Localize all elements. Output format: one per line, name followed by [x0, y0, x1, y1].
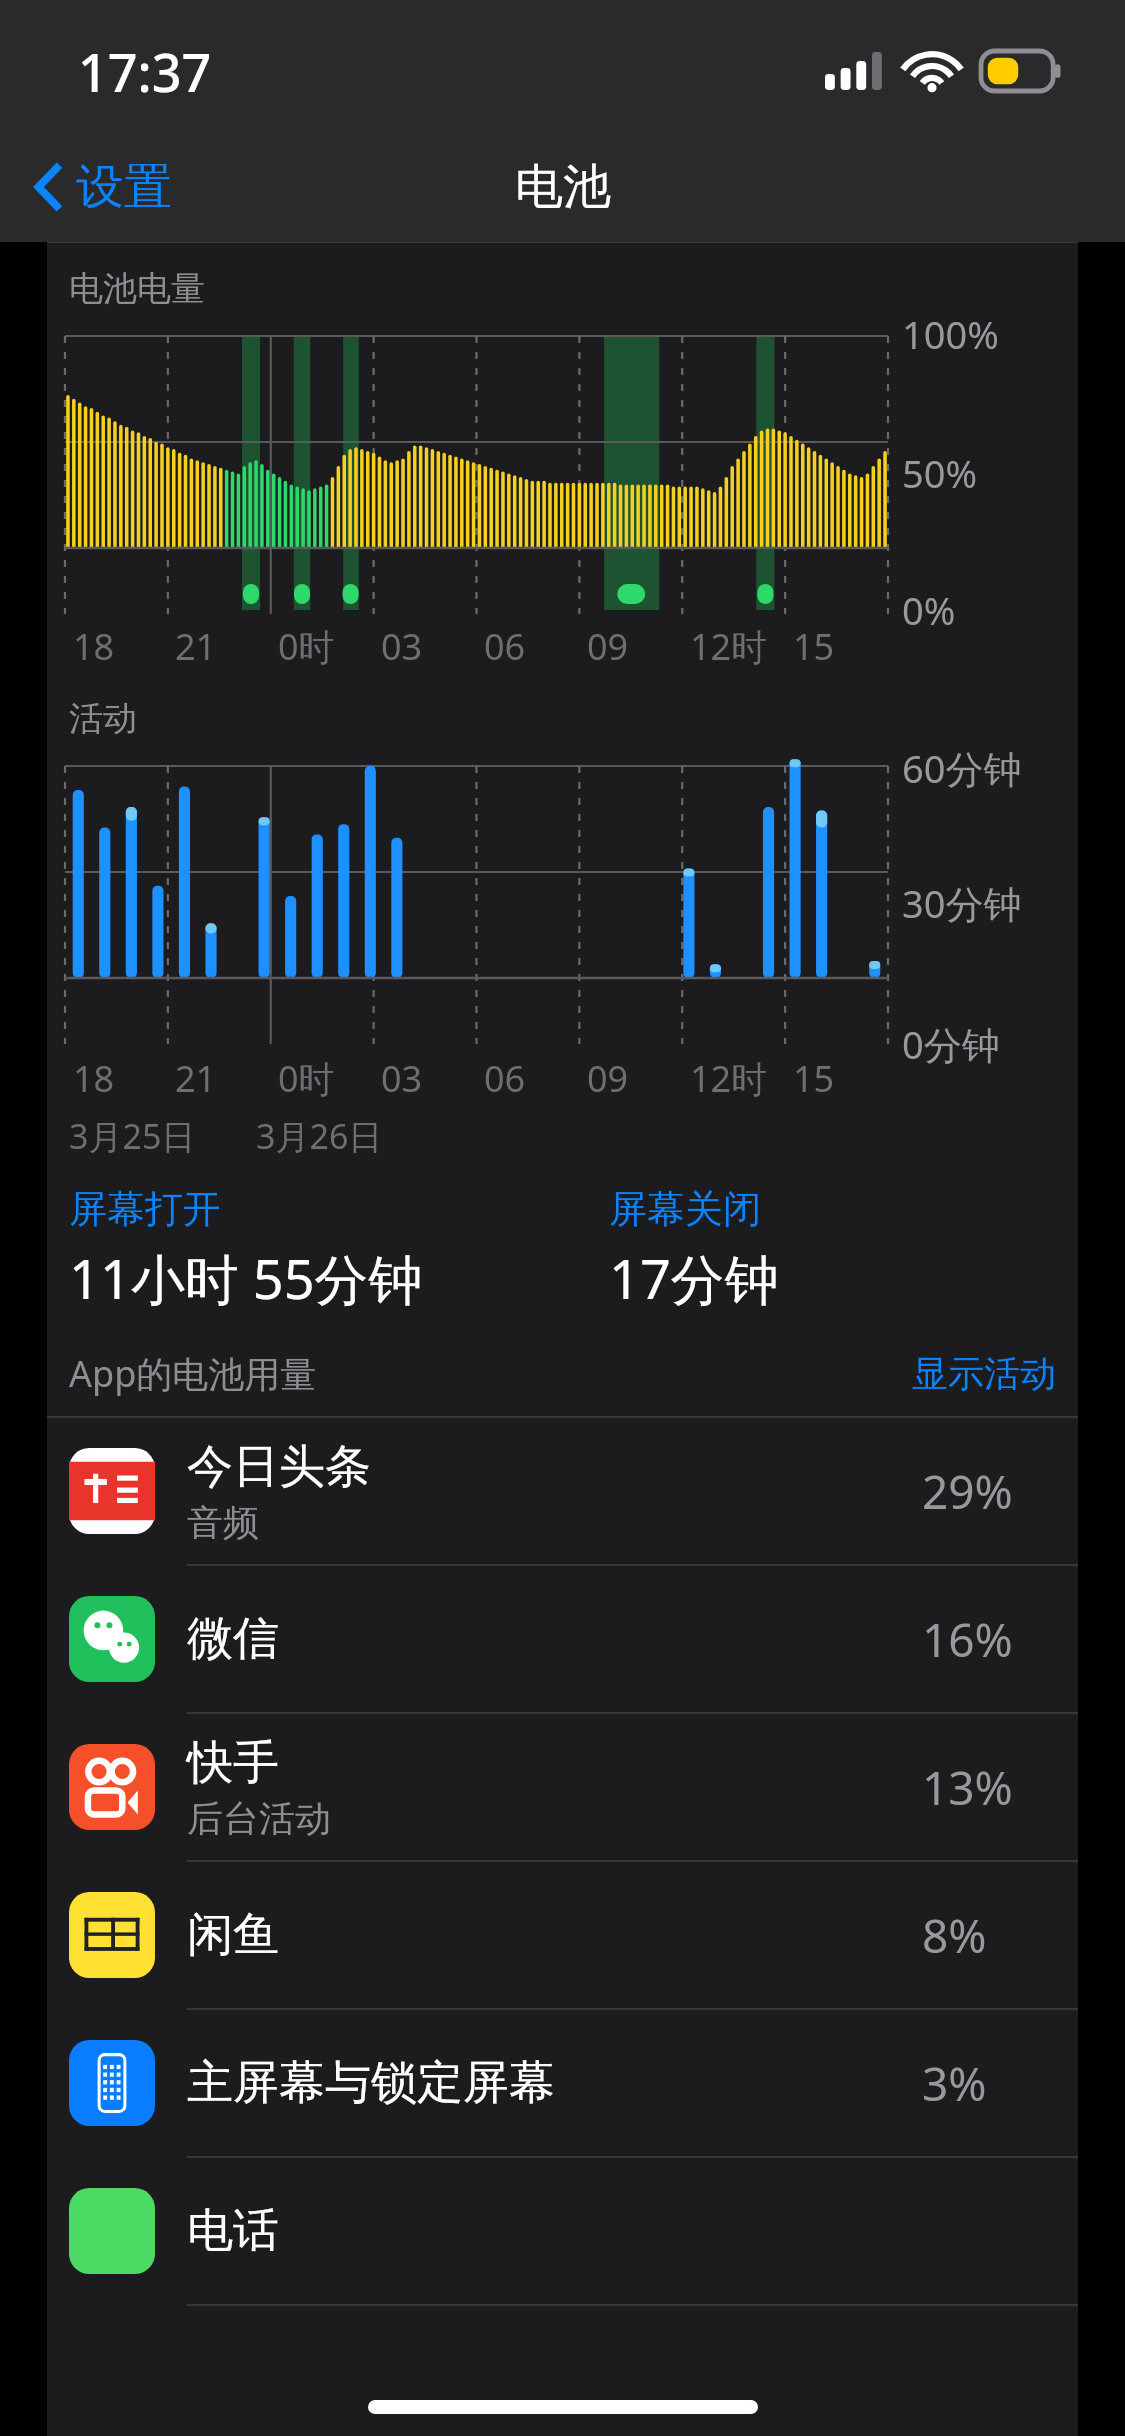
- staticText: 21: [175, 1054, 217, 1103]
- staticText: 12时: [690, 622, 768, 671]
- button[interactable]: 屏幕打开: [69, 1185, 609, 1315]
- staticText: 电池: [515, 157, 611, 217]
- staticText: 主屏幕与锁定屏幕: [187, 2054, 555, 2112]
- staticText: 0时: [278, 622, 335, 671]
- staticText: 100%: [902, 308, 999, 360]
- staticText: 09: [587, 622, 629, 671]
- button[interactable]: 今日头条: [47, 1418, 1078, 1566]
- staticText: 15: [793, 622, 835, 671]
- button[interactable]: 电话: [47, 2158, 1078, 2306]
- button[interactable]: 闲鱼: [47, 1862, 1078, 2010]
- staticText: 0%: [902, 584, 956, 636]
- staticText: 微信: [187, 1610, 279, 1668]
- staticText: 屏幕关闭: [609, 1185, 761, 1233]
- button[interactable]: 快手: [47, 1714, 1078, 1862]
- staticText: App的电池用量: [69, 1349, 317, 1398]
- staticText: 03: [381, 1054, 423, 1103]
- button[interactable]: 主屏幕与锁定屏幕: [47, 2010, 1078, 2158]
- staticText: 屏幕打开: [69, 1185, 221, 1233]
- staticText: 17:37: [78, 36, 212, 107]
- staticText: 今日头条: [187, 1438, 371, 1496]
- button[interactable]: 微信: [47, 1566, 1078, 1714]
- staticText: 后台活动: [187, 1796, 331, 1841]
- button[interactable]: 显示活动: [912, 1351, 1056, 1396]
- staticText: 18: [73, 622, 115, 671]
- staticText: 18: [73, 1054, 115, 1103]
- staticText: 06: [484, 622, 526, 671]
- staticText: 8%: [922, 1904, 1052, 1967]
- staticText: 03: [381, 622, 423, 671]
- staticText: 活动: [69, 697, 137, 740]
- staticText: 06: [484, 1054, 526, 1103]
- staticText: 16%: [922, 1608, 1052, 1671]
- staticText: 17分钟: [609, 1241, 779, 1315]
- staticText: 显示活动: [912, 1351, 1056, 1396]
- staticText: 0时: [278, 1054, 335, 1103]
- staticText: 快手: [187, 1734, 279, 1792]
- staticText: 12时: [690, 1054, 768, 1103]
- staticText: 30分钟: [902, 877, 1022, 929]
- staticText: 09: [587, 1054, 629, 1103]
- staticText: 设置: [76, 157, 172, 217]
- staticText: 3月26日: [256, 1113, 383, 1159]
- staticText: 0分钟: [902, 1018, 1000, 1070]
- staticText: 29%: [922, 1460, 1052, 1523]
- staticText: 音频: [187, 1500, 259, 1545]
- staticText: 11小时 55分钟: [69, 1241, 423, 1315]
- button[interactable]: 屏幕关闭: [609, 1185, 1078, 1315]
- staticText: 50%: [902, 447, 978, 499]
- staticText: 15: [793, 1054, 835, 1103]
- staticText: 13%: [922, 1756, 1052, 1819]
- button[interactable]: 设置: [26, 149, 180, 225]
- staticText: 闲鱼: [187, 1906, 279, 1964]
- staticText: 21: [175, 622, 217, 671]
- staticText: 60分钟: [902, 742, 1022, 794]
- staticText: 3%: [922, 2052, 1052, 2115]
- staticText: 3月25日: [69, 1113, 196, 1159]
- staticText: 电话: [187, 2202, 279, 2260]
- staticText: 电池电量: [69, 267, 205, 310]
